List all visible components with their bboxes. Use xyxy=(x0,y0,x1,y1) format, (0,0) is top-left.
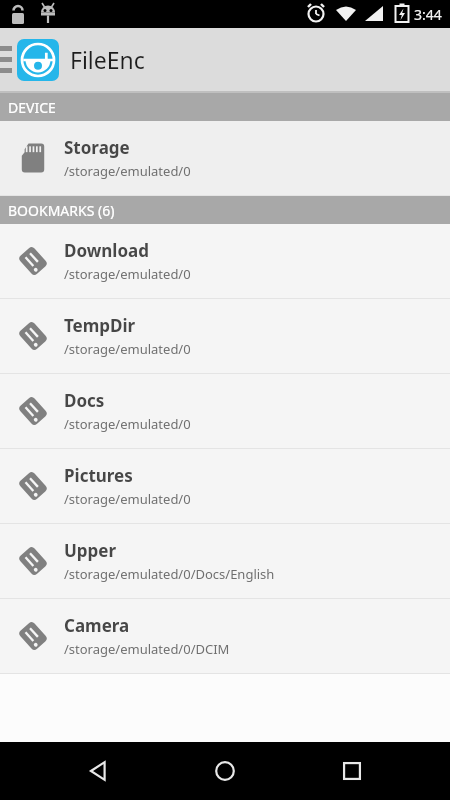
staticText: /storage/emulated/0/DCIM xyxy=(64,640,230,658)
staticText: Download xyxy=(64,239,149,262)
staticText: DEVICE xyxy=(8,98,56,117)
button[interactable]: Pictures xyxy=(0,449,450,523)
button[interactable]: Home xyxy=(196,742,254,800)
button[interactable]: Recent apps xyxy=(323,742,381,800)
staticText: 3:44 xyxy=(414,5,442,24)
staticText: Camera xyxy=(64,614,130,637)
staticText: Upper xyxy=(64,539,117,562)
button[interactable]: Storage xyxy=(0,121,450,195)
staticText: /storage/emulated/0 xyxy=(64,415,191,433)
staticText: /storage/emulated/0/Docs/English xyxy=(64,565,275,583)
button[interactable]: Download xyxy=(0,224,450,298)
staticText: /storage/emulated/0 xyxy=(64,265,191,283)
button[interactable]: Back xyxy=(69,742,127,800)
staticText: TempDir xyxy=(64,314,136,337)
button[interactable]: Open navigation drawer xyxy=(0,28,14,91)
staticText: Pictures xyxy=(64,464,133,487)
staticText: FileEnc xyxy=(70,44,145,75)
staticText: BOOKMARKS (6) xyxy=(8,201,115,220)
staticText: Storage xyxy=(64,136,130,159)
staticText: /storage/emulated/0 xyxy=(64,162,191,180)
button[interactable]: Docs xyxy=(0,374,450,448)
button[interactable]: TempDir xyxy=(0,299,450,373)
staticText: /storage/emulated/0 xyxy=(64,340,191,358)
button[interactable]: Upper xyxy=(0,524,450,598)
button[interactable]: Camera xyxy=(0,599,450,673)
staticText: Docs xyxy=(64,389,105,412)
staticText: /storage/emulated/0 xyxy=(64,490,191,508)
